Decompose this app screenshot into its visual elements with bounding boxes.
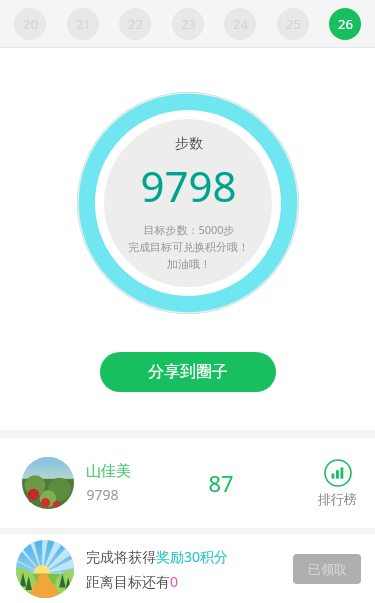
staticText: 加油哦！	[167, 257, 211, 271]
staticText: 20	[23, 15, 38, 33]
staticText: 87	[208, 468, 234, 498]
button[interactable]: 20	[14, 8, 46, 40]
staticText: 完成目标可兑换积分哦！	[128, 240, 249, 254]
other: 排行榜	[324, 459, 352, 487]
button[interactable]: 23	[172, 8, 204, 40]
button[interactable]: 21	[67, 8, 99, 40]
button[interactable]: 25	[277, 8, 309, 40]
button[interactable]: 26	[329, 8, 361, 40]
staticText: 23	[181, 15, 196, 33]
staticText: 分享到圈子	[148, 362, 228, 382]
staticText: 完成将获得奖励30积分	[86, 547, 229, 566]
button[interactable]: 分享到圈子	[100, 352, 276, 392]
staticText: 已领取	[308, 561, 347, 577]
staticText: 9798	[86, 485, 119, 504]
button[interactable]: 山佳美	[0, 438, 375, 528]
staticText: 21	[76, 15, 91, 33]
staticText: 9798	[140, 157, 237, 214]
staticText: 24	[233, 15, 248, 33]
staticText: 排行榜	[318, 491, 357, 507]
staticText: 距离目标还有0	[86, 572, 179, 591]
button[interactable]: 已领取	[293, 554, 361, 584]
staticText: 山佳美	[86, 462, 131, 481]
staticText: 步数	[175, 135, 203, 153]
button[interactable]: 22	[119, 8, 151, 40]
staticText: 目标步数：5000步	[143, 222, 235, 237]
staticText: 25	[286, 15, 301, 33]
staticText: 26	[338, 15, 353, 33]
staticText: 22	[128, 15, 143, 33]
button[interactable]: 24	[224, 8, 256, 40]
